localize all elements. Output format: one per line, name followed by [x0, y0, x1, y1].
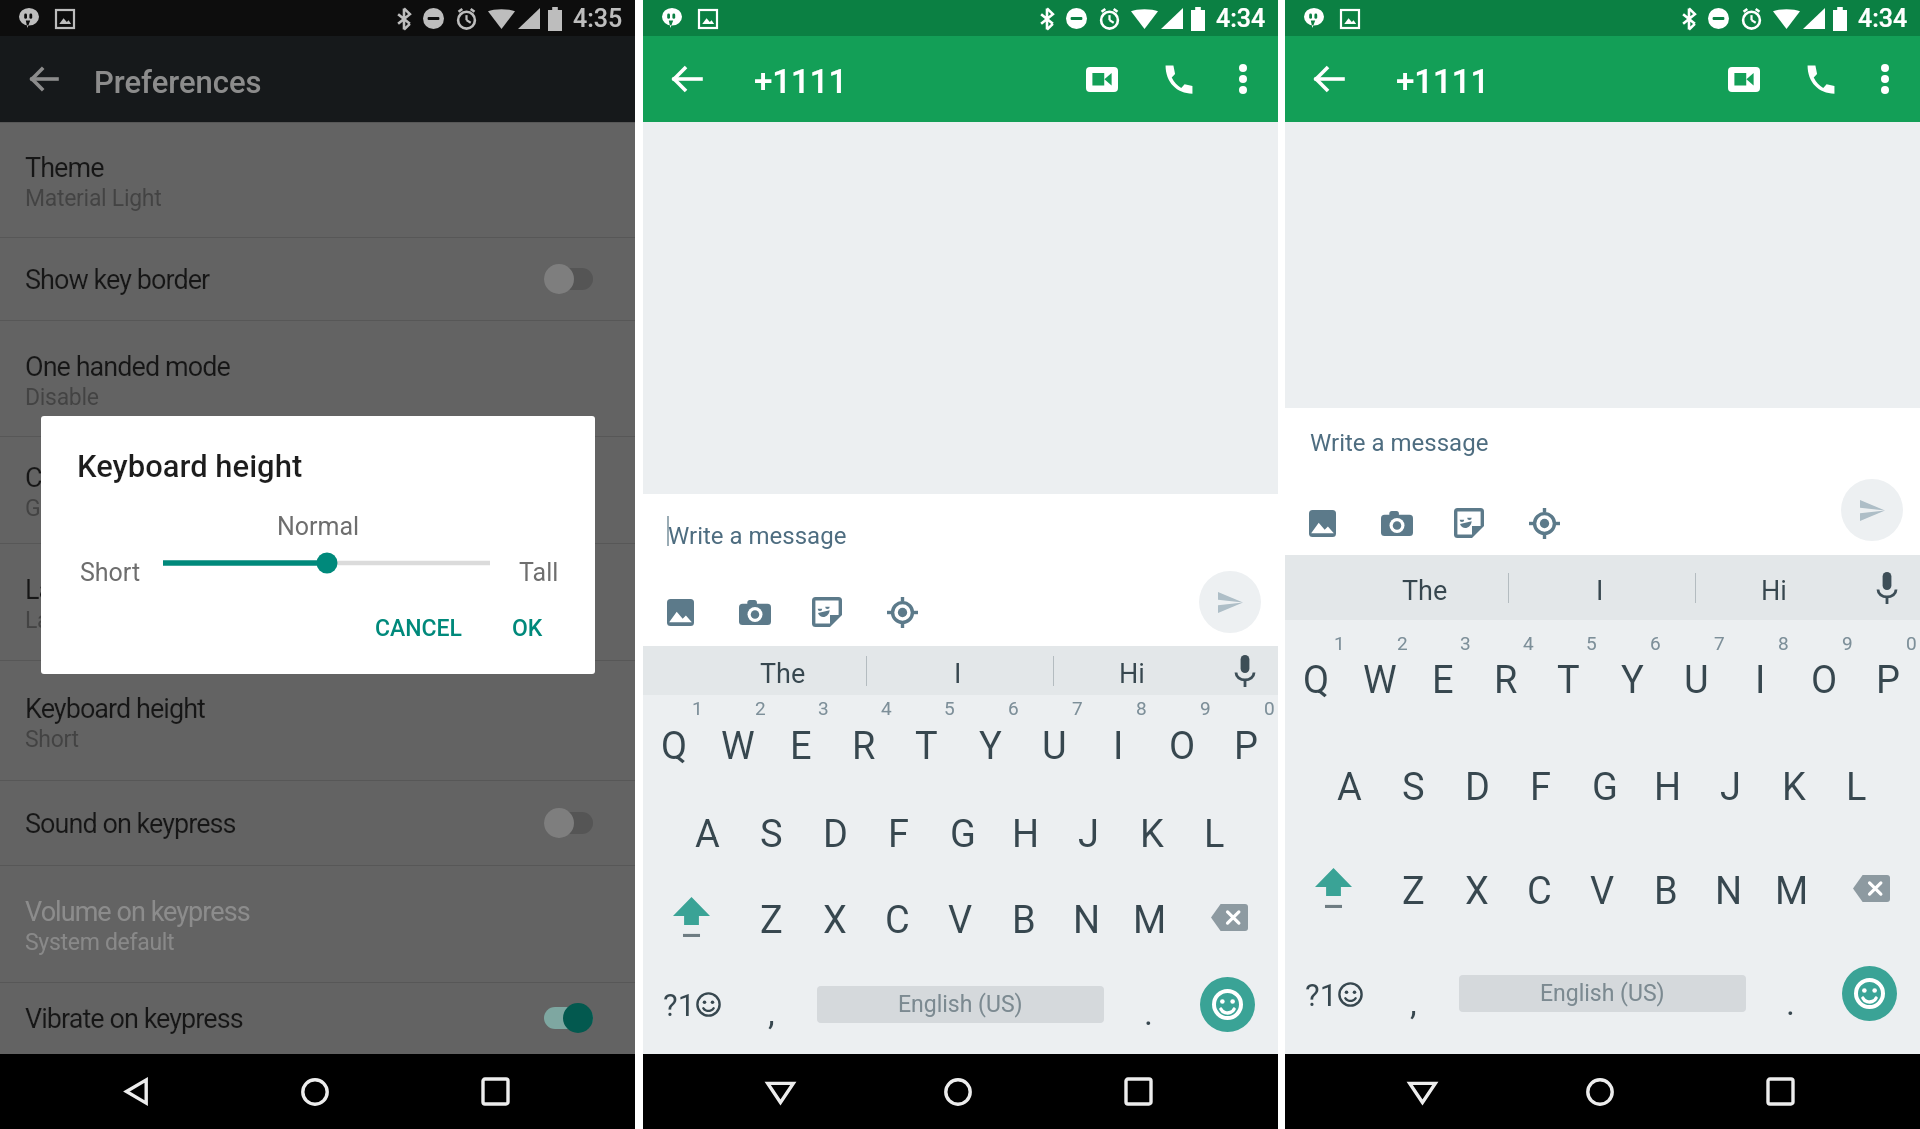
button[interactable]: Hi — [1053, 646, 1211, 695]
button[interactable]: Camera — [730, 587, 780, 637]
button[interactable]: Video call — [1716, 51, 1772, 107]
button[interactable]: T — [1537, 623, 1600, 732]
button[interactable]: Y — [958, 698, 1022, 788]
button[interactable]: Z — [1382, 834, 1445, 943]
button[interactable]: Language — [0, 543, 635, 660]
button[interactable]: Backspace — [1823, 834, 1920, 943]
button[interactable]: Recents — [457, 1054, 533, 1129]
button[interactable]: X — [1445, 834, 1508, 943]
button[interactable]: Hi — [1695, 555, 1853, 620]
button[interactable]: Emoji — [1842, 966, 1897, 1021]
button[interactable]: J — [1057, 786, 1120, 876]
button[interactable]: Back — [99, 1054, 175, 1129]
button[interactable]: Back — [660, 52, 714, 106]
button[interactable]: The — [643, 646, 866, 695]
button[interactable]: Location — [1519, 498, 1569, 548]
button[interactable]: T — [895, 698, 958, 788]
button[interactable]: S — [1381, 730, 1445, 839]
button[interactable]: K — [1120, 786, 1183, 876]
button[interactable]: Shift — [1285, 834, 1382, 943]
button[interactable]: Back — [1302, 52, 1356, 106]
button[interactable]: More options — [1857, 51, 1913, 107]
button[interactable]: Sticker — [1444, 498, 1494, 548]
button[interactable]: F — [867, 786, 931, 876]
button[interactable]: I — [1086, 698, 1150, 788]
button[interactable]: O — [1150, 698, 1214, 788]
button[interactable]: D — [803, 786, 867, 876]
button[interactable]: L — [1183, 786, 1246, 876]
button[interactable]: R — [832, 698, 895, 788]
button[interactable]: Insert photo — [655, 587, 705, 637]
button[interactable]: N — [1055, 872, 1118, 962]
button[interactable]: A — [1317, 730, 1381, 839]
button[interactable]: Sticker — [802, 587, 852, 637]
button[interactable]: V — [929, 872, 992, 962]
button[interactable]: M — [1760, 834, 1823, 943]
button[interactable]: I — [1508, 555, 1695, 620]
button[interactable]: Recents — [1100, 1054, 1176, 1129]
button[interactable]: E — [1411, 623, 1474, 732]
button[interactable]: R — [1474, 623, 1537, 732]
button[interactable]: English (US) — [1459, 975, 1746, 1012]
button[interactable]: The — [1285, 555, 1508, 620]
button[interactable]: M — [1118, 872, 1181, 962]
button[interactable]: Shift — [643, 872, 740, 962]
button[interactable]: Location — [877, 587, 927, 637]
button[interactable]: Send — [1841, 479, 1903, 541]
button[interactable]: H — [994, 786, 1057, 876]
button[interactable]: P — [1856, 623, 1920, 732]
button[interactable]: Home — [1562, 1054, 1638, 1129]
button[interactable]: Call — [1793, 51, 1849, 107]
button[interactable]: V — [1571, 834, 1634, 943]
button[interactable]: Volume on keypress — [0, 865, 635, 982]
button[interactable]: C — [1508, 834, 1571, 943]
button[interactable]: Y — [1600, 623, 1664, 732]
button[interactable]: OK — [498, 602, 557, 654]
button[interactable]: Keyboard height — [0, 660, 635, 780]
button[interactable]: U — [1022, 698, 1086, 788]
button[interactable]: ?1 — [647, 959, 737, 1049]
button[interactable]: G — [1573, 730, 1636, 839]
button[interactable]: E — [769, 698, 832, 788]
button[interactable]: O — [1792, 623, 1856, 732]
button[interactable]: More options — [1215, 51, 1271, 107]
button[interactable]: Sound on keypress — [0, 780, 635, 865]
button[interactable]: Home — [277, 1054, 353, 1129]
button[interactable]: Q — [643, 698, 706, 788]
button[interactable]: H — [1636, 730, 1699, 839]
button[interactable]: B — [992, 872, 1055, 962]
button[interactable]: Hide keyboard — [742, 1054, 818, 1129]
button[interactable]: D — [1445, 730, 1509, 839]
button[interactable]: . — [1760, 939, 1820, 1048]
button[interactable]: Z — [740, 872, 803, 962]
button[interactable]: G — [931, 786, 994, 876]
button[interactable]: F — [1509, 730, 1573, 839]
button[interactable]: Q — [1285, 623, 1348, 732]
button[interactable]: Video call — [1074, 51, 1130, 107]
button[interactable]: Back — [17, 52, 71, 106]
button[interactable]: L — [1825, 730, 1888, 839]
button[interactable]: Call — [1151, 51, 1207, 107]
button[interactable]: Vibrate on keypress — [0, 982, 635, 1053]
button[interactable]: Customise — [0, 436, 635, 543]
button[interactable]: CANCEL — [362, 602, 475, 654]
button[interactable]: Voice input — [1853, 555, 1920, 620]
button[interactable]: One handed mode — [0, 320, 635, 436]
button[interactable]: B — [1634, 834, 1697, 943]
button[interactable]: I — [866, 646, 1053, 695]
button[interactable]: P — [1214, 698, 1278, 788]
button[interactable]: I — [1728, 623, 1792, 732]
button[interactable]: , — [741, 959, 801, 1049]
button[interactable]: Hide keyboard — [1384, 1054, 1460, 1129]
button[interactable]: Theme — [0, 122, 635, 237]
button[interactable]: A — [675, 786, 739, 876]
button[interactable]: W — [1348, 623, 1411, 732]
button[interactable]: W — [706, 698, 769, 788]
button[interactable]: K — [1762, 730, 1825, 839]
button[interactable]: C — [866, 872, 929, 962]
button[interactable]: . — [1118, 959, 1178, 1049]
button[interactable]: ?1 — [1289, 939, 1379, 1048]
button[interactable]: Backspace — [1181, 872, 1278, 962]
button[interactable]: Home — [920, 1054, 996, 1129]
button[interactable]: Emoji — [1200, 977, 1255, 1032]
